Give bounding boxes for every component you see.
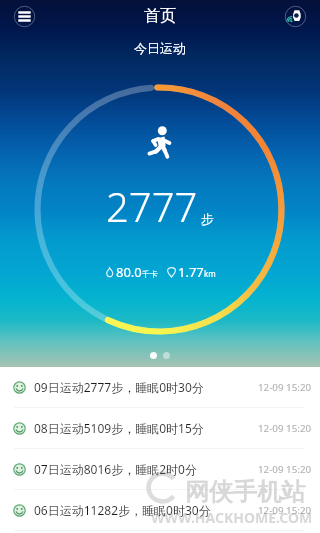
- staticText: 08日运动5109步，睡眠0时15分: [34, 420, 204, 436]
- button[interactable]: 06日运动11282步，睡眠0时30分: [0, 490, 320, 530]
- staticText: 12-09 15:20: [258, 381, 312, 394]
- button[interactable]: 08日运动5109步，睡眠0时15分: [0, 408, 320, 448]
- staticText: WWW.HACKHOME.COM: [151, 508, 313, 527]
- staticText: 09日运动2777步，睡眠0时30分: [34, 379, 204, 395]
- button[interactable]: Connected device: [281, 2, 310, 31]
- staticText: 千卡: [142, 269, 158, 279]
- staticText: 今日运动: [134, 40, 186, 56]
- button[interactable]: 09日运动2777步，睡眠0时30分: [0, 367, 320, 407]
- staticText: 网侠手机站: [185, 477, 305, 507]
- staticText: 首页: [144, 6, 176, 26]
- staticText: 12-09 15:20: [258, 463, 312, 476]
- staticText: 12-09 15:20: [258, 504, 312, 517]
- staticText: 12-09 15:20: [258, 422, 312, 435]
- staticText: 1.77: [178, 263, 204, 281]
- staticText: 80.0: [116, 263, 142, 281]
- button[interactable]: 07日运动8016步，睡眠2时0分: [0, 449, 320, 489]
- staticText: 2777: [106, 179, 198, 233]
- button[interactable]: Menu: [10, 2, 39, 31]
- staticText: km: [204, 268, 216, 279]
- staticText: 步: [201, 211, 214, 227]
- staticText: 06日运动11282步，睡眠0时30分: [34, 502, 211, 518]
- staticText: 07日运动8016步，睡眠2时0分: [34, 461, 197, 477]
